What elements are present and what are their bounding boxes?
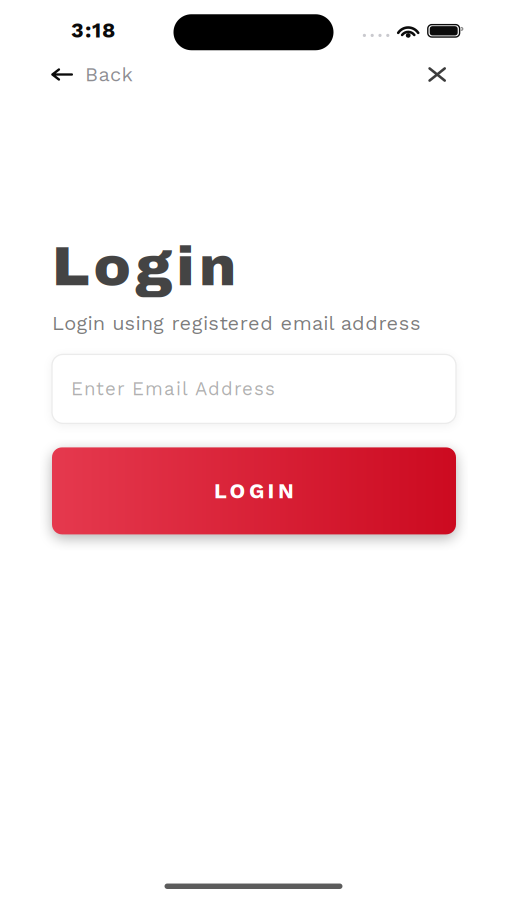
staticText: Enter Email Address <box>71 378 275 400</box>
button[interactable]: LOGIN <box>52 447 456 534</box>
staticText: Login using registered email address <box>52 311 421 335</box>
button[interactable]: Close <box>408 58 507 95</box>
staticText: 3:18 <box>71 18 115 43</box>
staticText: Back <box>85 63 132 86</box>
button[interactable]: Back <box>0 54 148 99</box>
staticText: LOGIN <box>214 478 294 503</box>
staticText: Login <box>52 236 236 297</box>
